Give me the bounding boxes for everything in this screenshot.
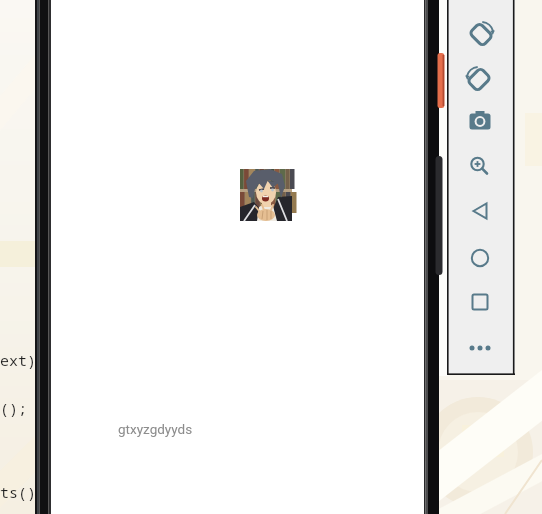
button[interactable]: gtxyzgdyyds [118, 421, 193, 437]
staticText: gtxyzgdyyds [118, 421, 193, 437]
button[interactable] [462, 193, 498, 229]
button[interactable] [462, 284, 498, 320]
button[interactable] [461, 60, 497, 96]
button[interactable] [240, 169, 292, 221]
button[interactable] [463, 15, 499, 51]
button[interactable] [460, 147, 496, 183]
staticText: (); [0, 398, 28, 418]
staticText: ext) [0, 350, 37, 370]
button[interactable] [462, 240, 498, 276]
staticText: ts() [0, 482, 37, 502]
button[interactable] [462, 103, 498, 139]
button[interactable] [462, 330, 498, 366]
